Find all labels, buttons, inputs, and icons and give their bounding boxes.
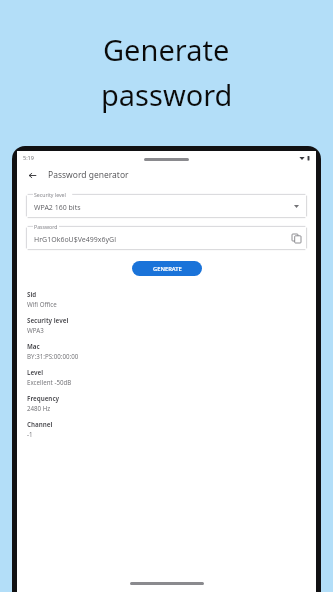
button[interactable]: Copy password (290, 232, 303, 245)
staticText: Password (34, 223, 58, 230)
button[interactable]: Back (23, 166, 41, 184)
staticText: 2480 Hz (27, 404, 51, 412)
staticText: WPA2 160 bits (34, 203, 81, 213)
button[interactable]: GENERATE (132, 261, 202, 276)
button[interactable]: Expand security level (290, 200, 302, 212)
staticText: HrG1Ok6oU$Ve499x6yGl (34, 235, 116, 245)
staticText: Frequency (27, 394, 60, 402)
staticText: Generate (103, 30, 230, 69)
staticText: WPA3 (27, 326, 44, 334)
staticText: Channel (27, 420, 53, 428)
staticText: Password generator (48, 169, 129, 181)
staticText: -1 (27, 430, 33, 438)
staticText: 5:19 (23, 154, 34, 161)
staticText: BY:31:PS:00:00:00 (27, 352, 79, 360)
staticText: Wifi Office (27, 300, 57, 308)
staticText: Mac (27, 342, 40, 350)
staticText: GENERATE (153, 265, 182, 273)
staticText: Level (27, 368, 44, 376)
staticText: Security level (34, 191, 66, 198)
staticText: Security level (27, 316, 69, 324)
staticText: Sid (27, 290, 37, 298)
staticText: Excellent -50dB (27, 378, 72, 386)
staticText: password (101, 75, 233, 114)
